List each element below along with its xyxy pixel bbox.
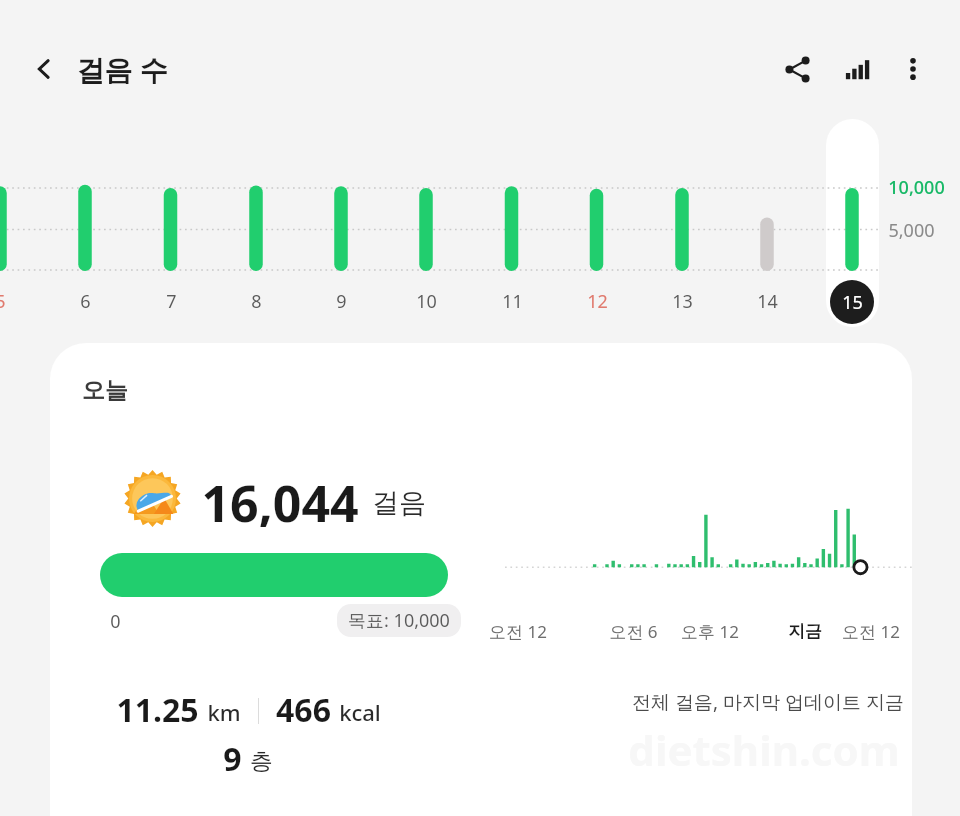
- staticText: 16,044: [201, 469, 359, 527]
- staticText: kcal: [339, 697, 381, 727]
- staticText: 전체 걸음, 마지막 업데이트 지금: [632, 689, 904, 715]
- button[interactable]: Share: [772, 44, 822, 94]
- button[interactable]: Chart: [832, 44, 882, 94]
- staticText: 15: [842, 290, 863, 315]
- staticText: 5: [0, 289, 6, 314]
- staticText: 11: [502, 289, 523, 314]
- staticText: 0: [110, 609, 121, 634]
- staticText: 오늘: [82, 376, 128, 405]
- staticText: 14: [757, 289, 778, 314]
- staticText: 오후 12: [681, 620, 739, 643]
- staticText: 9: [336, 289, 347, 314]
- staticText: 10,000: [888, 175, 945, 200]
- staticText: km: [207, 697, 241, 727]
- staticText: 8: [251, 289, 262, 314]
- staticText: 오전 6: [609, 620, 658, 643]
- button[interactable]: More options: [889, 45, 937, 93]
- staticText: 지금: [788, 621, 822, 642]
- button[interactable]: [826, 119, 879, 327]
- staticText: 466: [276, 688, 331, 730]
- button[interactable]: 15: [830, 280, 874, 324]
- staticText: 목표: 10,000: [348, 608, 450, 633]
- staticText: 10: [416, 289, 437, 314]
- staticText: 층: [250, 747, 273, 776]
- staticText: 걸음: [372, 486, 426, 520]
- staticText: 7: [166, 289, 177, 314]
- staticText: dietshin.com: [628, 721, 900, 778]
- button[interactable]: Back: [20, 45, 68, 93]
- staticText: 6: [80, 289, 91, 314]
- staticText: 오전 12: [489, 620, 547, 643]
- staticText: 11.25: [116, 688, 199, 730]
- staticText: 걸음 수: [76, 50, 168, 88]
- staticText: 9: [223, 737, 242, 779]
- staticText: 5,000: [888, 218, 935, 243]
- staticText: 오전 12: [842, 620, 900, 643]
- staticText: 13: [672, 289, 693, 314]
- button[interactable]: 오늘: [50, 343, 912, 816]
- staticText: 12: [587, 289, 608, 314]
